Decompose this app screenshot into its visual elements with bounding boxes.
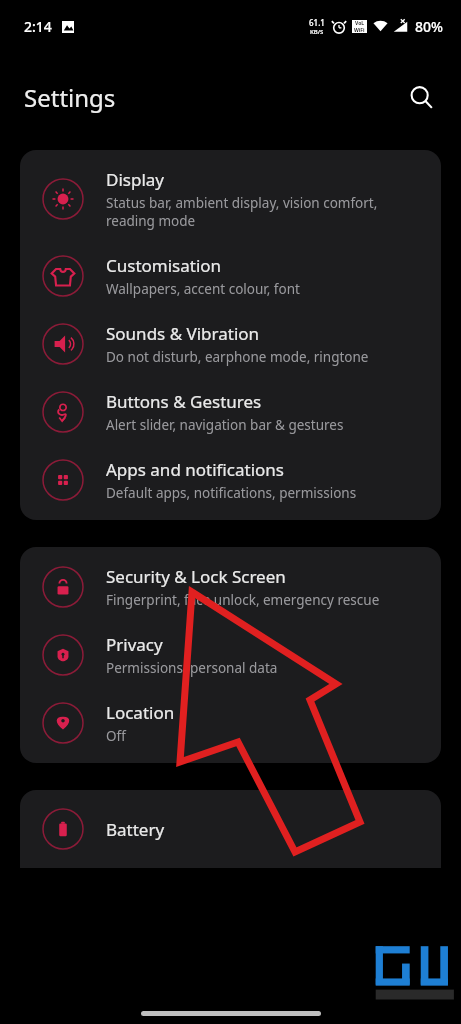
staticText: Off: [106, 727, 126, 745]
staticText: Settings: [24, 81, 116, 114]
staticText: Battery: [106, 818, 165, 841]
staticText: WiFi: [354, 27, 365, 33]
button[interactable]: Search: [399, 75, 443, 119]
button[interactable]: Customisation: [20, 242, 441, 310]
button[interactable]: Battery: [20, 796, 441, 862]
staticText: 2:14: [24, 17, 52, 36]
staticText: Wallpapers, accent colour, font: [106, 280, 300, 298]
button[interactable]: Location: [20, 689, 441, 757]
staticText: Permissions, personal data: [106, 659, 278, 677]
button[interactable]: Security & Lock Screen: [20, 553, 441, 621]
staticText: KB/S: [310, 28, 324, 36]
staticText: Security & Lock Screen: [106, 565, 286, 588]
button[interactable]: Apps and notifications: [20, 446, 441, 514]
staticText: Apps and notifications: [106, 458, 284, 481]
staticText: Sounds & Vibration: [106, 322, 260, 345]
button[interactable]: Privacy: [20, 621, 441, 689]
staticText: 61.1: [309, 17, 325, 28]
staticText: Privacy: [106, 633, 163, 656]
staticText: Alert slider, navigation bar & gestures: [106, 416, 344, 434]
button[interactable]: Display: [20, 156, 441, 242]
staticText: Buttons & Gestures: [106, 390, 262, 413]
button[interactable]: Buttons & Gestures: [20, 378, 441, 446]
staticText: VoL: [355, 20, 365, 27]
staticText: Location: [106, 701, 175, 724]
staticText: Display: [106, 168, 164, 191]
staticText: Fingerprint, face unlock, emergency resc…: [106, 591, 380, 609]
button[interactable]: Sounds & Vibration: [20, 310, 441, 378]
staticText: Customisation: [106, 254, 222, 277]
staticText: Do not disturb, earphone mode, ringtone: [106, 348, 369, 366]
staticText: Default apps, notifications, permissions: [106, 484, 357, 502]
staticText: Status bar, ambient display, vision comf…: [106, 194, 378, 230]
staticText: 80%: [415, 17, 443, 36]
